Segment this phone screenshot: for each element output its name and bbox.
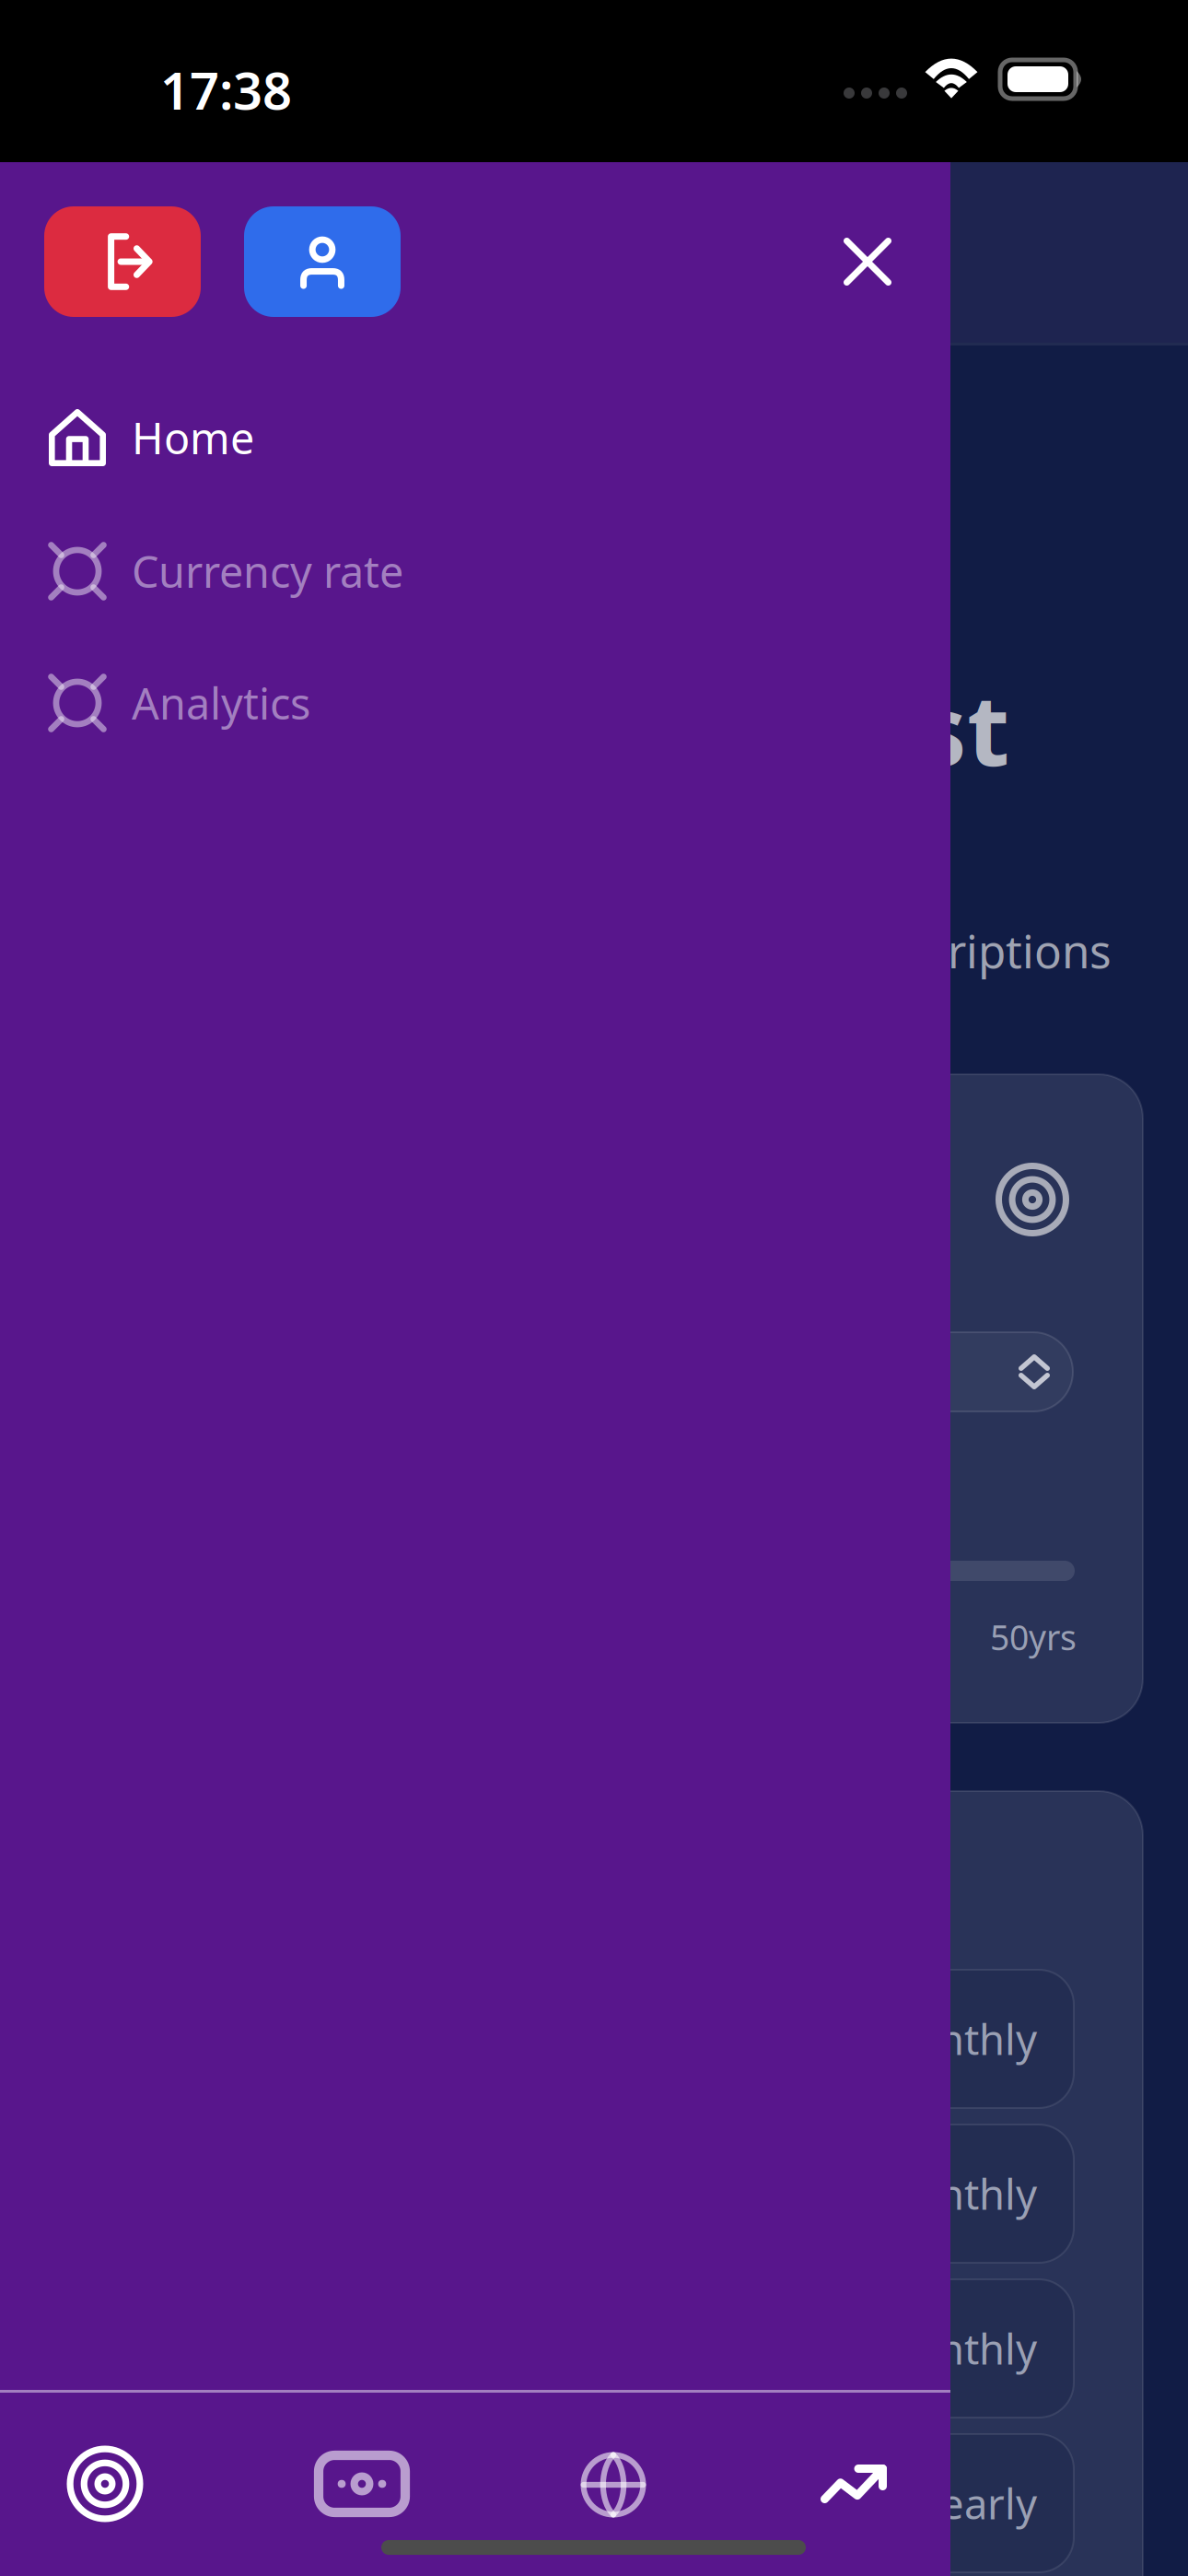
staticText: Home [132, 409, 254, 466]
button[interactable]: Log out [44, 206, 201, 317]
staticText: 50yrs [990, 1614, 1077, 1660]
staticText: Invest [701, 662, 1009, 793]
button[interactable]: Goals [41, 2429, 169, 2539]
staticText: monthly [875, 2011, 1037, 2067]
staticText: monthly [875, 2321, 1037, 2376]
staticText: yearly [919, 2475, 1037, 2531]
staticText: Subscriptions [823, 920, 1112, 981]
button[interactable]: Account [244, 206, 401, 317]
staticText: 17:38 [160, 55, 292, 124]
button[interactable]: Currency rate [0, 510, 950, 632]
button[interactable]: Close menu [812, 206, 923, 317]
button[interactable]: Home [0, 377, 950, 498]
button[interactable]: Analytics [0, 642, 950, 764]
button[interactable]: Analytics [789, 2429, 918, 2539]
staticText: Currency rate [132, 543, 403, 600]
staticText: monthly [875, 2166, 1037, 2221]
staticText: Analytics [132, 674, 310, 732]
button[interactable]: Markets [549, 2430, 678, 2540]
button[interactable]: Cash [297, 2429, 426, 2539]
